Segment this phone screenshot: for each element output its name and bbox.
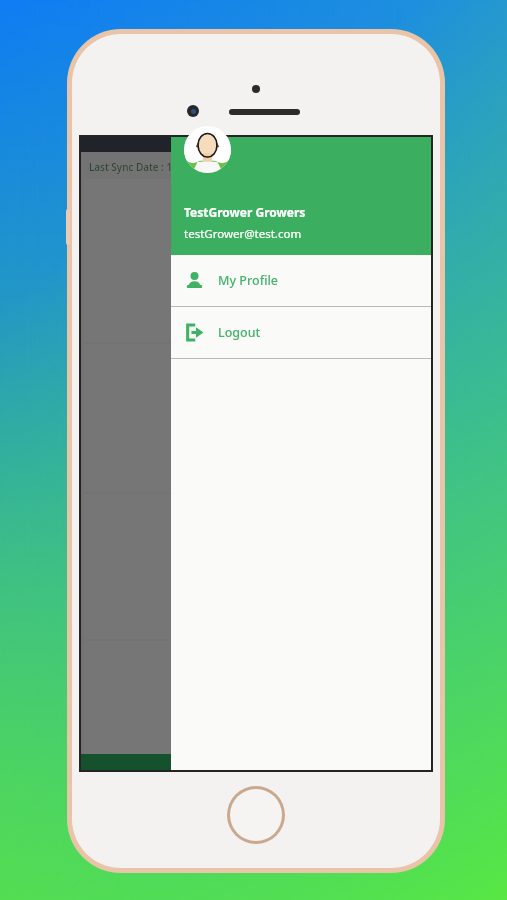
button[interactable] [84,494,428,639]
staticText: testGrower@test.com [184,226,302,242]
button[interactable]: Logout [171,307,431,358]
button[interactable] [84,641,428,754]
staticText: My Profile [218,272,279,289]
staticText: Logout [218,324,261,341]
button[interactable] [84,179,428,342]
staticText: Last Sync Date : 10-02-2019 [89,160,219,174]
button[interactable]: Home [227,786,285,844]
staticText: TestGrower Growers [184,204,306,220]
button[interactable] [84,344,428,492]
button[interactable]: My Profile [171,255,431,306]
